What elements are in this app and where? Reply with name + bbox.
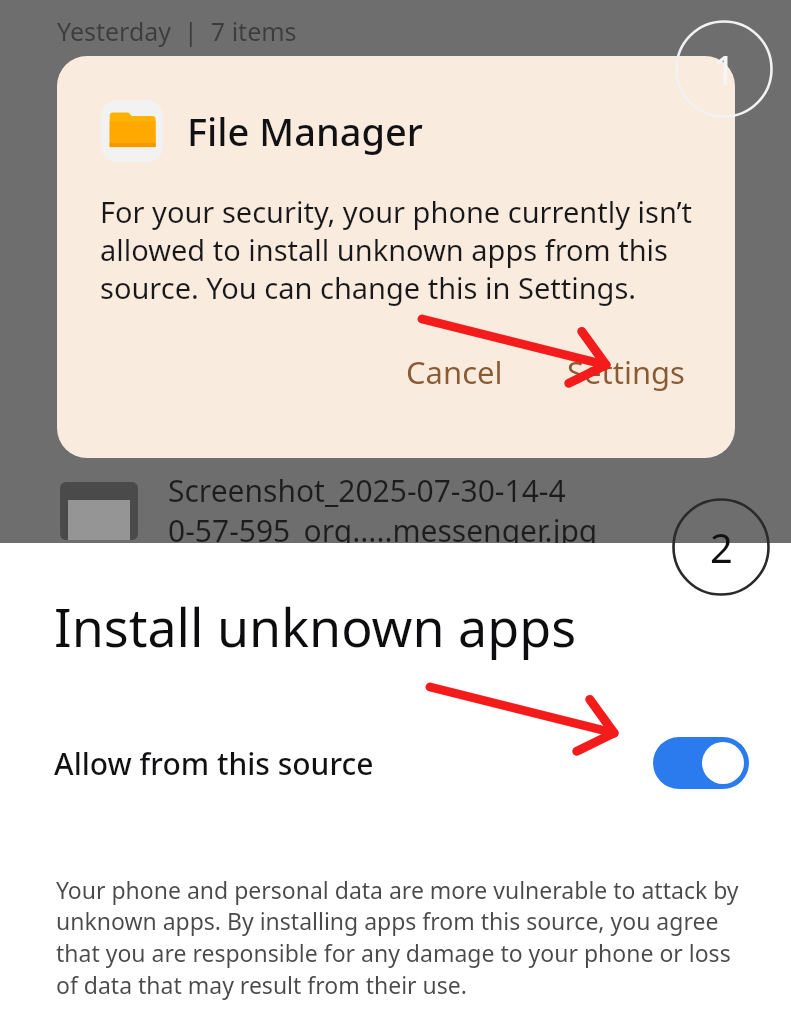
- staticText: Allow from this source: [54, 743, 374, 784]
- other: Allow from this source toggle: [653, 737, 749, 789]
- staticText: 2: [710, 520, 733, 574]
- button[interactable]: Allow from this source: [0, 724, 791, 802]
- staticText: 1: [713, 42, 736, 96]
- button[interactable]: Settings: [557, 345, 695, 399]
- staticText: For your security, your phone currently …: [100, 192, 699, 307]
- staticText: Install unknown apps: [54, 591, 577, 662]
- staticText: Settings: [567, 351, 685, 393]
- staticText: Screenshot_2025-07-30-14-4 0-57-595_org.…: [168, 470, 598, 551]
- button[interactable]: Cancel: [396, 345, 513, 399]
- staticText: File Manager: [187, 105, 423, 157]
- staticText: Cancel: [406, 351, 503, 393]
- staticText: Yesterday | 7 items: [57, 14, 297, 48]
- staticText: Your phone and personal data are more vu…: [56, 874, 743, 1001]
